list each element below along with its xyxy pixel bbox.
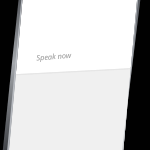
button[interactable]: Phone showing voice search, Speak now (0, 0, 150, 150)
